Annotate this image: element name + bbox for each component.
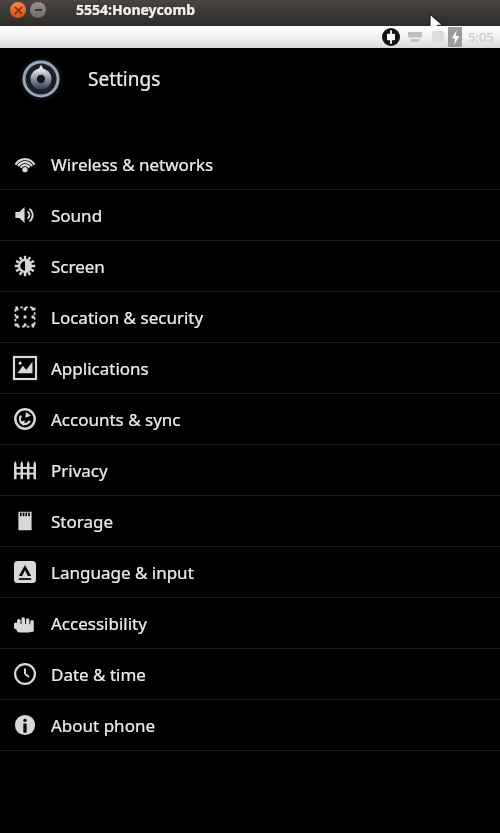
button[interactable]: Language & input xyxy=(0,547,500,597)
staticText: Location & security xyxy=(51,306,204,329)
button[interactable]: Wireless & networks xyxy=(0,139,500,189)
staticText: Settings xyxy=(88,66,161,92)
staticText: 5:05 xyxy=(468,28,494,46)
button[interactable]: Minimize xyxy=(30,2,46,18)
button[interactable]: Screen xyxy=(0,241,500,291)
button[interactable]: Close xyxy=(10,2,26,18)
button[interactable]: Location & security xyxy=(0,292,500,342)
button[interactable]: Accounts & sync xyxy=(0,394,500,444)
staticText: Accounts & sync xyxy=(51,408,181,431)
staticText: Storage xyxy=(51,510,114,533)
button[interactable]: Privacy xyxy=(0,445,500,495)
button[interactable]: Sound xyxy=(0,190,500,240)
staticText: Screen xyxy=(51,255,105,278)
staticText: 5554:Honeycomb xyxy=(76,0,196,19)
staticText: Date & time xyxy=(51,663,146,686)
staticText: Privacy xyxy=(51,459,108,482)
staticText: About phone xyxy=(51,714,156,737)
button[interactable]: Date & time xyxy=(0,649,500,699)
button[interactable]: About phone xyxy=(0,700,500,750)
button[interactable]: Accessibility xyxy=(0,598,500,648)
staticText: Language & input xyxy=(51,561,194,584)
staticText: Wireless & networks xyxy=(51,153,214,176)
staticText: Sound xyxy=(51,204,103,227)
button[interactable]: Applications xyxy=(0,343,500,393)
staticText: Accessibility xyxy=(51,612,147,635)
button[interactable]: Storage xyxy=(0,496,500,546)
staticText: Applications xyxy=(51,357,149,380)
